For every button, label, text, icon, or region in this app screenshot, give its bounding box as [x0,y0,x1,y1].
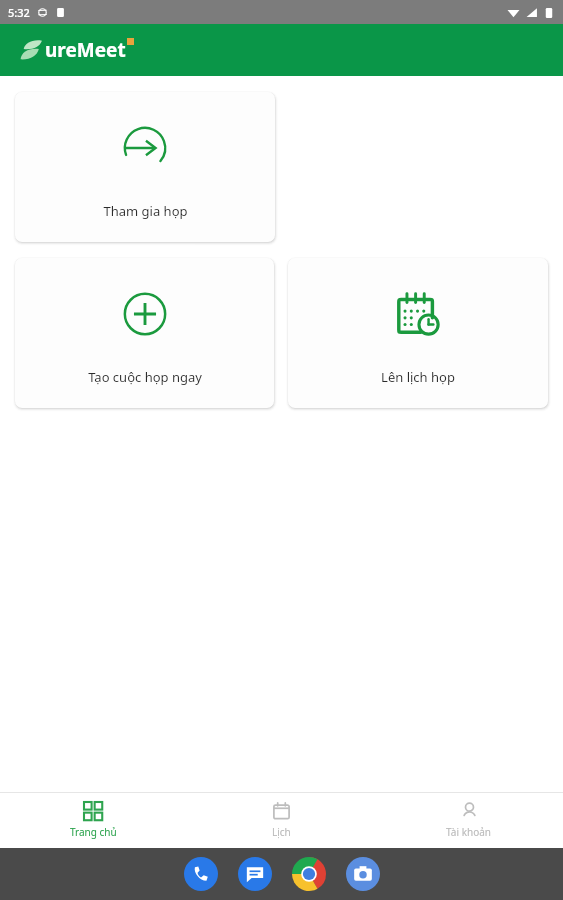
button[interactable]: Tạo cuộc họp ngay [15,258,274,408]
button[interactable]: Tài khoản [375,793,563,848]
staticText: ureMeet [45,37,126,63]
button[interactable]: Lịch [187,793,375,848]
staticText: Tạo cuộc họp ngay [88,368,202,386]
button[interactable]: Messages [237,856,273,892]
staticText: 5:32 [8,5,30,20]
button[interactable]: Trang chủ [0,793,187,848]
button[interactable]: Camera [345,856,381,892]
button[interactable]: Chrome [291,856,327,892]
staticText: Trang chủ [70,825,117,839]
staticText: Lên lịch họp [381,368,455,386]
staticText: Tham gia họp [103,202,188,220]
button[interactable]: Lên lịch họp [288,258,548,408]
button[interactable]: Tham gia họp [15,92,275,242]
button[interactable]: Phone [183,856,219,892]
staticText: Lịch [272,825,291,839]
staticText: Tài khoản [446,825,492,839]
